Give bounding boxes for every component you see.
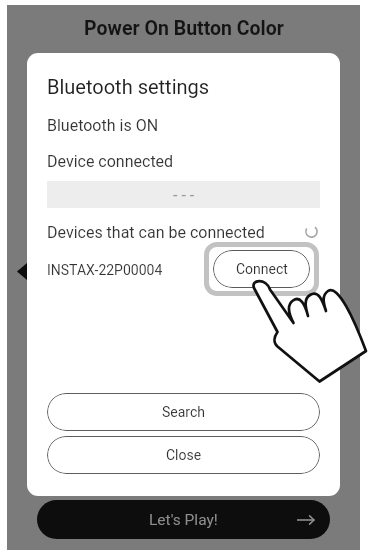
staticText: Power On Button Color [84,17,284,40]
staticText: Device connected [47,152,174,171]
button[interactable]: Let's Play! [37,500,330,539]
staticText: Devices that can be connected [47,223,265,242]
staticText: Let's Play! [149,511,218,529]
other: Next [297,514,314,526]
other: Searching for devices [304,224,319,239]
button[interactable]: Search [47,393,320,431]
staticText: Bluetooth settings [47,75,210,98]
staticText: INSTAX-22P00004 [47,262,163,278]
button[interactable]: Connect [213,250,310,288]
staticText: Connect [236,261,288,277]
staticText: Search [162,404,206,420]
staticText: Bluetooth is ON [47,116,159,135]
button[interactable]: Close [47,436,320,474]
staticText: - - - [173,186,195,205]
staticText: Close [166,447,202,463]
